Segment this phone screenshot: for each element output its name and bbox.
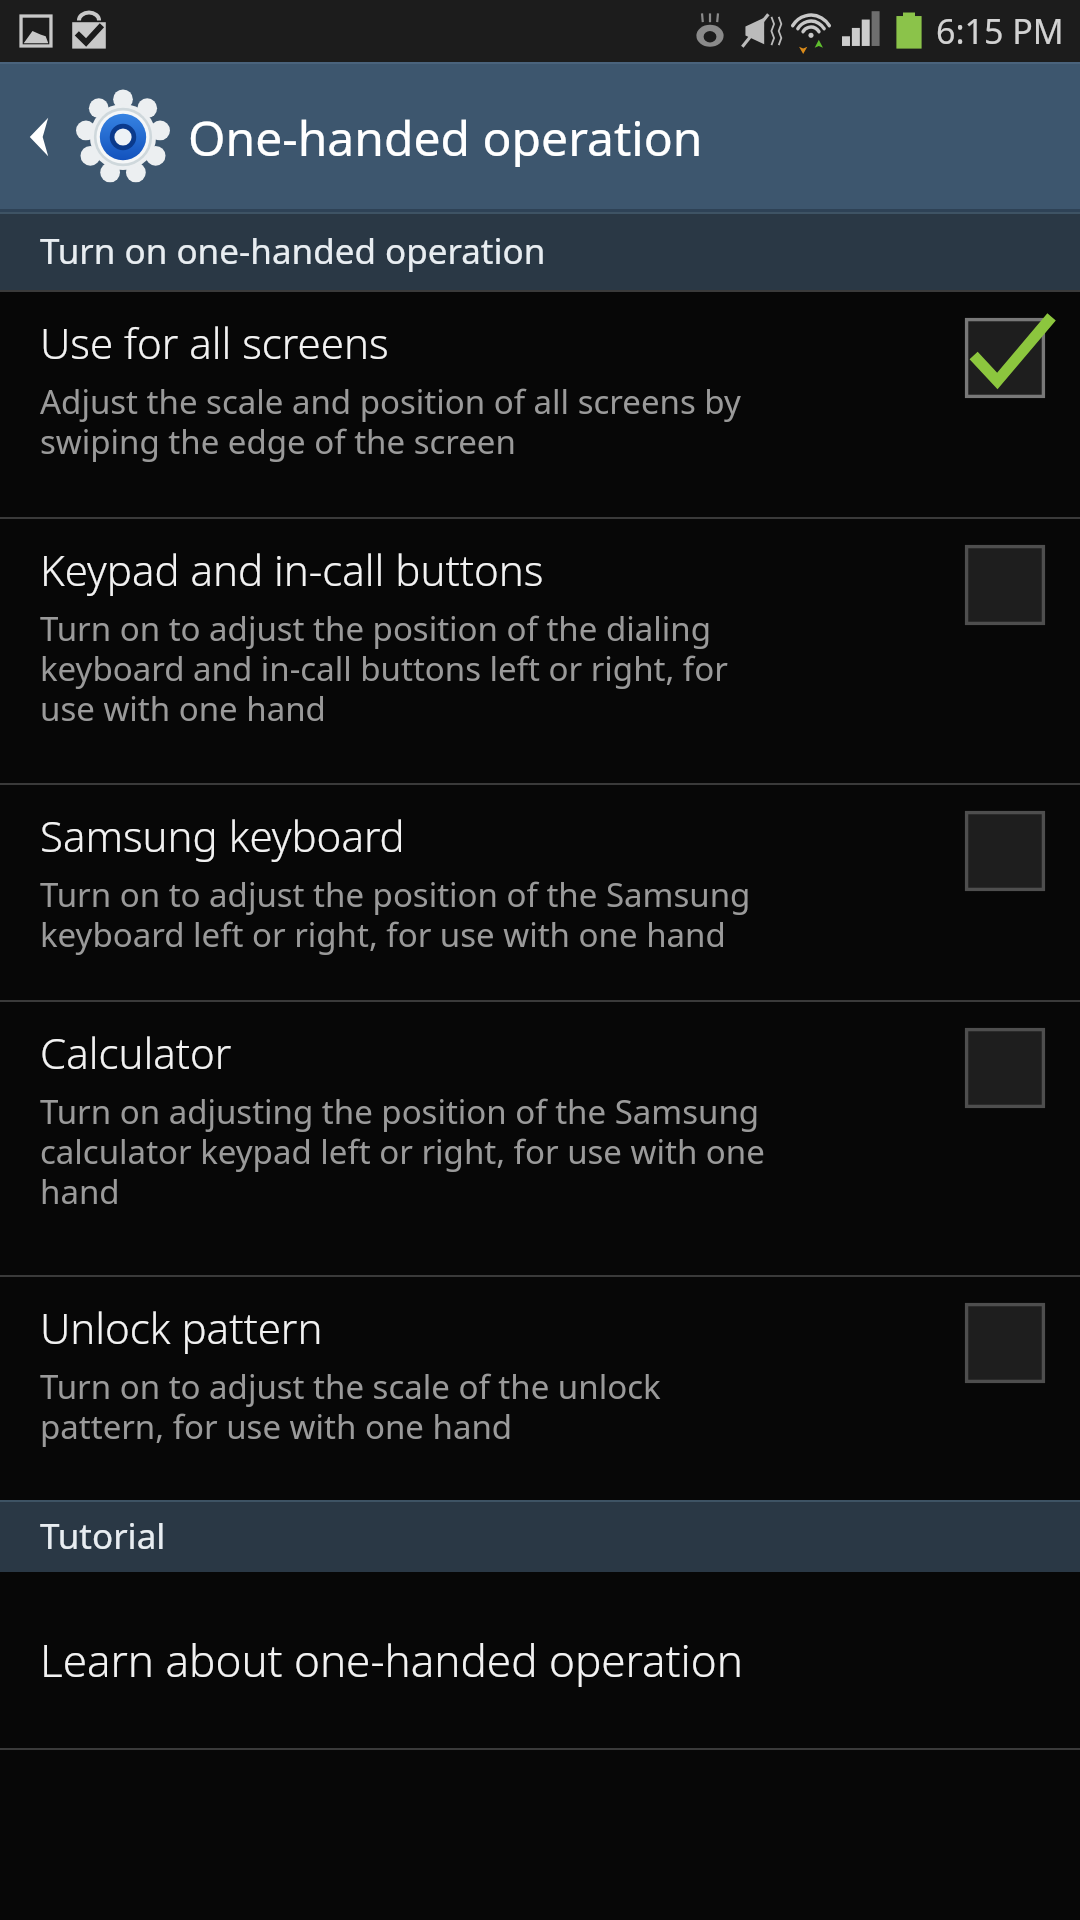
button[interactable]: Back <box>0 62 78 212</box>
button[interactable]: Keypad and in-call buttons <box>0 519 1080 783</box>
staticText: Turn on one-handed operation <box>40 227 546 275</box>
button[interactable]: Unlock pattern <box>0 1277 1080 1500</box>
staticText: Unlock pattern <box>40 1299 323 1356</box>
button[interactable]: Learn about one-handed operation <box>0 1572 1080 1748</box>
staticText: Use for all screens <box>40 314 389 371</box>
staticText: Learn about one-handed operation <box>40 1630 743 1690</box>
staticText: Adjust the scale and position of all scr… <box>40 379 741 464</box>
staticText: 6:15 PM <box>936 8 1064 54</box>
button[interactable]: Calculator <box>0 1002 1080 1275</box>
button[interactable]: Samsung keyboard <box>0 785 1080 1000</box>
staticText: Turn on to adjust the position of the di… <box>40 606 728 731</box>
staticText: Turn on to adjust the position of the Sa… <box>40 872 751 957</box>
staticText: One-handed operation <box>188 105 703 170</box>
staticText: Tutorial <box>40 1512 166 1560</box>
staticText: Turn on to adjust the scale of the unloc… <box>40 1364 661 1449</box>
staticText: Turn on adjusting the position of the Sa… <box>40 1089 765 1214</box>
staticText: Calculator <box>40 1024 232 1081</box>
staticText: Keypad and in-call buttons <box>40 541 544 598</box>
staticText: Samsung keyboard <box>40 807 405 864</box>
button[interactable]: Use for all screens <box>0 292 1080 517</box>
